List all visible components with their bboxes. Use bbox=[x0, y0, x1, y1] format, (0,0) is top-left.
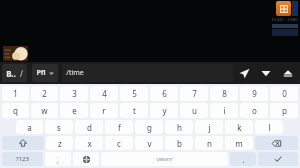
button[interactable]: a bbox=[16, 120, 43, 134]
button[interactable]: m bbox=[225, 136, 253, 150]
button[interactable]: x bbox=[75, 136, 103, 150]
button[interactable]: y bbox=[150, 103, 178, 118]
button[interactable]: Pfl bbox=[32, 64, 58, 82]
staticText: d bbox=[87, 122, 92, 133]
staticText: w bbox=[41, 105, 48, 116]
staticText: 7 bbox=[192, 88, 197, 99]
staticText: j bbox=[208, 122, 211, 133]
staticText: h bbox=[177, 122, 182, 133]
staticText: 2 bbox=[42, 88, 47, 99]
staticText: k bbox=[237, 122, 242, 133]
staticText: 8 bbox=[222, 88, 227, 99]
staticText: QWERTY bbox=[156, 157, 173, 162]
button[interactable]: g bbox=[135, 120, 163, 134]
button[interactable]: q bbox=[2, 103, 29, 118]
staticText: u bbox=[192, 105, 197, 116]
staticText: 3 bbox=[72, 88, 77, 99]
button[interactable]: o bbox=[240, 103, 268, 118]
staticText: y bbox=[162, 105, 167, 116]
button[interactable]: /time bbox=[62, 64, 233, 82]
button[interactable]: . bbox=[230, 152, 256, 166]
button[interactable]: B.. bbox=[2, 64, 27, 82]
staticText: z bbox=[58, 138, 62, 149]
button[interactable]: Space bbox=[101, 152, 228, 166]
staticText: / bbox=[20, 68, 23, 79]
staticText: 1 bbox=[13, 88, 18, 99]
staticText: f bbox=[118, 122, 121, 133]
button[interactable]: Send bbox=[233, 62, 255, 84]
staticText: t bbox=[133, 105, 136, 116]
staticText: a bbox=[27, 122, 32, 133]
staticText: 2 580 bbox=[287, 17, 298, 22]
staticText: x bbox=[87, 138, 92, 149]
button[interactable]: 3 bbox=[60, 86, 88, 101]
staticText: b bbox=[177, 138, 182, 149]
button[interactable]: 5 bbox=[120, 86, 148, 101]
staticText: B.. bbox=[6, 68, 16, 79]
button[interactable]: Scroll down bbox=[255, 62, 277, 84]
staticText: i bbox=[223, 105, 226, 116]
button[interactable]: p bbox=[270, 103, 298, 118]
button[interactable]: i bbox=[210, 103, 238, 118]
staticText: o bbox=[252, 105, 257, 116]
staticText: p bbox=[282, 105, 287, 116]
staticText: 0 bbox=[282, 88, 287, 99]
button[interactable]: h bbox=[165, 120, 193, 134]
staticText: n bbox=[207, 138, 212, 149]
button[interactable]: ?123 bbox=[2, 152, 43, 166]
staticText: 9 bbox=[252, 88, 257, 99]
button[interactable]: e bbox=[60, 103, 88, 118]
button[interactable]: 6 bbox=[150, 86, 178, 101]
button[interactable]: 2 bbox=[31, 86, 58, 101]
button[interactable]: f bbox=[105, 120, 133, 134]
button[interactable]: k bbox=[225, 120, 253, 134]
staticText: Pfl bbox=[36, 68, 46, 78]
staticText: s bbox=[57, 122, 61, 133]
button[interactable]: 9 bbox=[240, 86, 268, 101]
staticText: v bbox=[147, 138, 152, 149]
staticText: ?123 bbox=[16, 155, 29, 163]
staticText: 6 bbox=[162, 88, 167, 99]
button[interactable]: v bbox=[135, 136, 163, 150]
button[interactable]: s bbox=[45, 120, 73, 134]
button[interactable]: d bbox=[75, 120, 103, 134]
button[interactable]: , bbox=[45, 152, 71, 166]
button[interactable]: r bbox=[90, 103, 118, 118]
staticText: l bbox=[268, 122, 271, 133]
button[interactable]: Backspace bbox=[255, 136, 298, 150]
staticText: 5 bbox=[132, 88, 137, 99]
staticText: . bbox=[242, 154, 245, 165]
staticText: 10 421 bbox=[271, 17, 284, 22]
staticText: e bbox=[72, 105, 77, 116]
button[interactable]: Preview thumbnail bbox=[3, 46, 28, 61]
staticText: r bbox=[102, 105, 106, 116]
button[interactable]: l bbox=[255, 120, 283, 134]
button[interactable]: Scroll up bbox=[277, 62, 299, 84]
button[interactable]: c bbox=[105, 136, 133, 150]
button[interactable]: n bbox=[195, 136, 223, 150]
button[interactable]: 1 bbox=[2, 86, 29, 101]
button[interactable]: j bbox=[195, 120, 223, 134]
staticText: ; bbox=[57, 158, 59, 166]
staticText: g bbox=[147, 122, 152, 133]
button[interactable]: b bbox=[165, 136, 193, 150]
button[interactable]: 7 bbox=[180, 86, 208, 101]
button[interactable]: Language bbox=[73, 152, 99, 166]
button[interactable]: z bbox=[46, 136, 73, 150]
staticText: c bbox=[117, 138, 121, 149]
button[interactable]: u bbox=[180, 103, 208, 118]
button[interactable]: Shift bbox=[2, 136, 44, 150]
button[interactable]: 4 bbox=[90, 86, 118, 101]
staticText: m bbox=[235, 138, 243, 149]
button[interactable]: w bbox=[31, 103, 58, 118]
button[interactable]: t bbox=[120, 103, 148, 118]
button[interactable]: 0 bbox=[270, 86, 298, 101]
staticText: 4 bbox=[102, 88, 107, 99]
button[interactable]: App icon bbox=[276, 1, 291, 16]
staticText: , bbox=[57, 153, 59, 158]
button[interactable]: 8 bbox=[210, 86, 238, 101]
staticText: /time bbox=[66, 68, 84, 78]
staticText: q bbox=[13, 105, 18, 116]
button[interactable]: Enter bbox=[258, 152, 298, 166]
